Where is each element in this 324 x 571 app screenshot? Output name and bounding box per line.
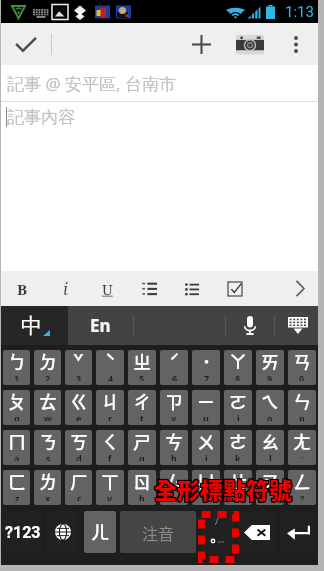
staticText: ㄦ	[91, 518, 109, 544]
staticText: ㄥ	[293, 470, 311, 494]
button[interactable]: ㄔ	[128, 390, 156, 425]
button[interactable]: ㄊ	[34, 390, 61, 425]
button[interactable]: ㄗ	[160, 390, 188, 425]
staticText: ㄨ	[197, 430, 215, 454]
staticText: b	[139, 492, 145, 501]
staticText: v	[107, 492, 113, 501]
staticText: o	[267, 412, 273, 421]
staticText: ㄩ	[197, 470, 215, 494]
staticText: .	[269, 492, 272, 501]
button[interactable]: ㄈ	[3, 470, 30, 505]
button[interactable]: ㄩ	[192, 470, 220, 505]
button[interactable]: ㄅ	[3, 350, 30, 385]
staticText: ㄧ	[197, 390, 215, 414]
button[interactable]: Italic	[44, 271, 86, 306]
button[interactable]: ㄚ	[224, 350, 252, 385]
button[interactable]: Delete	[238, 511, 276, 553]
button[interactable]: ˊ	[160, 350, 188, 385]
staticText: 8	[235, 372, 241, 381]
button[interactable]: ㄜ	[224, 430, 252, 465]
staticText: B	[17, 279, 28, 299]
staticText: ㄛ	[229, 390, 247, 414]
staticText: ?	[300, 492, 305, 501]
staticText: ˙	[202, 350, 211, 374]
staticText: n	[171, 492, 177, 501]
staticText: i	[237, 412, 240, 421]
button[interactable]: Save note	[1, 23, 51, 65]
staticText: u	[203, 412, 209, 421]
button[interactable]: Bold	[1, 271, 44, 306]
staticText: ㄌ	[39, 470, 57, 494]
staticText: /	[215, 517, 219, 528]
staticText: ㄗ	[165, 390, 183, 414]
staticText: ,	[237, 492, 240, 501]
button[interactable]: Add	[177, 23, 225, 65]
button[interactable]: Bulleted list	[171, 271, 213, 306]
staticText: w	[44, 412, 52, 421]
button[interactable]: Underline	[86, 271, 128, 306]
button[interactable]: En	[68, 306, 133, 345]
staticText: s	[46, 452, 51, 461]
button[interactable]: Hide keyboard	[274, 306, 321, 345]
button[interactable]: ㄧ	[192, 390, 220, 425]
button[interactable]: ˋ	[96, 350, 124, 385]
staticText: 記事內容	[7, 107, 75, 128]
button[interactable]: ㄡ	[256, 470, 284, 505]
staticText: f	[108, 452, 112, 461]
staticText: 1	[14, 372, 20, 381]
staticText: ㄍ	[70, 390, 88, 414]
button[interactable]: ㄐ	[96, 390, 124, 425]
button[interactable]: ㄞ	[256, 350, 284, 385]
button[interactable]: Change language	[47, 511, 78, 553]
button[interactable]: ㄠ	[256, 430, 284, 465]
staticText: r	[108, 412, 113, 421]
staticText: 0	[299, 372, 305, 381]
button[interactable]: ㄏ	[65, 470, 92, 505]
button[interactable]: ㄒ	[96, 470, 124, 505]
button[interactable]: ㄥ	[288, 470, 316, 505]
button[interactable]: ㄌ	[34, 470, 61, 505]
button[interactable]: ㄉ	[34, 350, 61, 385]
staticText: 全形標點符號	[153, 473, 291, 506]
button[interactable]: ㄖ	[128, 470, 156, 505]
button[interactable]: ㄟ	[256, 390, 284, 425]
button[interactable]: ㄍ	[65, 390, 92, 425]
button[interactable]: 注音	[120, 511, 196, 553]
button[interactable]: Voice input	[225, 306, 274, 345]
button[interactable]: ㄋ	[34, 430, 61, 465]
button[interactable]: ㄑ	[96, 430, 124, 465]
staticText: ㄐ	[101, 390, 119, 414]
button[interactable]: ㄨ	[192, 430, 220, 465]
staticText: ㄅ	[8, 350, 26, 374]
button[interactable]: More options	[274, 23, 318, 65]
button[interactable]: Enter	[280, 511, 317, 553]
button[interactable]: ㄓ	[128, 350, 156, 385]
button[interactable]: ㄕ	[128, 430, 156, 465]
staticText: ㄡ	[261, 470, 279, 494]
button[interactable]: 中	[1, 306, 68, 345]
button[interactable]: ˙	[192, 350, 220, 385]
button[interactable]: ㄙ	[160, 470, 188, 505]
button[interactable]: ㄛ	[224, 390, 252, 425]
staticText: 全形標點符號	[155, 472, 293, 505]
button[interactable]: Punctuation	[200, 511, 233, 553]
button[interactable]: ㄣ	[288, 390, 316, 425]
button[interactable]: ㄢ	[288, 350, 316, 385]
staticText: y	[171, 412, 177, 421]
button[interactable]: ㄘ	[160, 430, 188, 465]
button[interactable]: ㄦ	[84, 511, 116, 553]
staticText: p	[299, 412, 305, 421]
button[interactable]: ㄝ	[224, 470, 252, 505]
button[interactable]: ㄇ	[3, 430, 30, 465]
staticText: 1:13	[285, 3, 314, 21]
button[interactable]: Checklist	[213, 271, 256, 306]
button[interactable]: Numbered list	[128, 271, 171, 306]
button[interactable]: ㄎ	[65, 430, 92, 465]
staticText: ㄏ	[70, 470, 88, 494]
button[interactable]: ˇ	[65, 350, 92, 385]
button[interactable]: Camera	[225, 23, 274, 65]
button[interactable]: More formatting	[282, 271, 318, 306]
button[interactable]: Symbols	[3, 511, 43, 553]
button[interactable]: ㄤ	[288, 430, 316, 465]
button[interactable]: ㄆ	[3, 390, 30, 425]
